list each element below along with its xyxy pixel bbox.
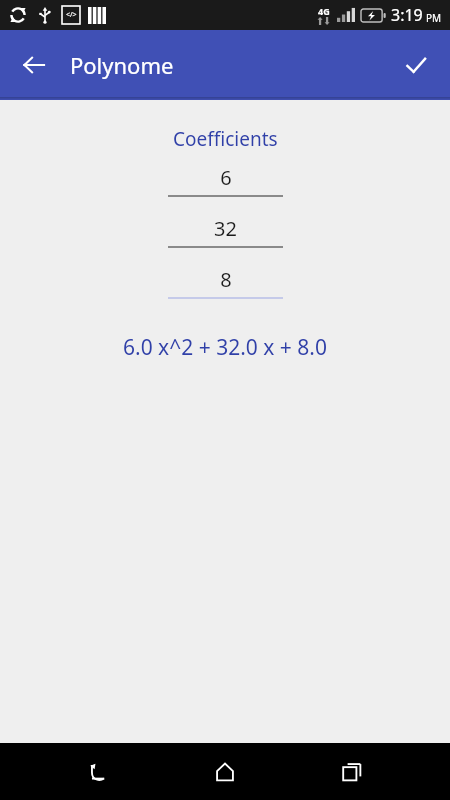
button[interactable]: Confirm [392, 41, 440, 89]
staticText: Polynome [70, 50, 174, 80]
button[interactable]: 6 [168, 160, 283, 211]
staticText: 6.0 x^2 + 32.0 x + 8.0 [123, 333, 327, 362]
staticText: PM [426, 11, 442, 25]
staticText: 4G [318, 5, 330, 17]
button[interactable]: Recent apps [324, 744, 380, 800]
staticText: 32 [214, 215, 237, 242]
button[interactable]: 8 [168, 262, 283, 313]
staticText: Coefficients [173, 126, 278, 152]
button[interactable]: Home [197, 744, 253, 800]
staticText: 3:19 [391, 4, 423, 26]
button[interactable]: Back [71, 744, 127, 800]
staticText: 6 [220, 164, 232, 191]
staticText: 8 [220, 266, 232, 293]
button[interactable]: Back [10, 41, 58, 89]
button[interactable]: 32 [168, 211, 283, 262]
staticText: </> [66, 10, 77, 20]
